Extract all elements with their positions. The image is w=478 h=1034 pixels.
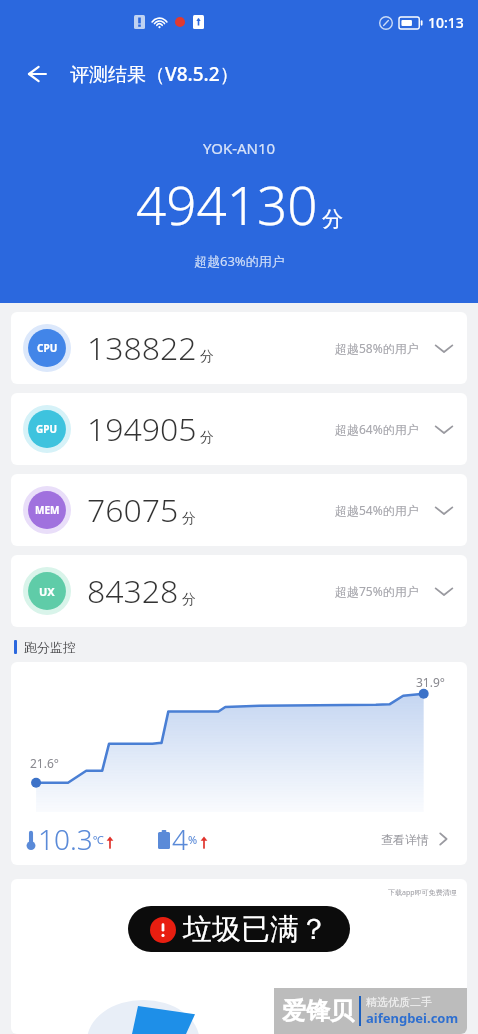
staticText: 评测结果（V8.5.2） [70,61,239,87]
staticText: 超越75%的用户 [335,583,419,599]
staticText: UX [39,584,55,599]
staticText: 4 [172,820,188,858]
button[interactable]: 查看详情 [381,829,453,849]
staticText: % [188,832,198,847]
staticText: 查看详情 [381,832,429,847]
button[interactable]: 下载app即可免费清理 [11,879,467,1034]
staticText: 84328 [87,569,179,613]
staticText: 精选优质二手 [366,995,432,1009]
staticText: 爱锋贝 [282,996,354,1026]
staticText: 31.9° [416,674,445,690]
staticText: 494130 [136,168,318,240]
staticText: 分 [200,429,214,447]
staticText: 下载app即可免费清理 [388,888,457,898]
staticText: CPU [37,341,58,355]
button[interactable]: CPU [11,312,467,384]
staticText: MEM [35,503,60,517]
staticText: 分 [200,348,214,366]
staticText: 超越58%的用户 [335,340,419,356]
staticText: YOK-AN10 [203,138,276,158]
staticText: 超越54%的用户 [335,502,419,518]
button[interactable]: UX [11,555,467,627]
staticText: 分 [182,510,196,528]
staticText: 超越63%的用户 [194,252,285,270]
staticText: 分 [322,206,343,232]
staticText: 10.3 [38,820,93,858]
button[interactable]: Back [16,54,56,94]
button[interactable]: MEM [11,474,467,546]
staticText: 76075 [87,488,179,532]
staticText: 分 [182,591,196,609]
button[interactable]: GPU [11,393,467,465]
staticText: aifengbei.com [366,1009,459,1027]
staticText: 138822 [87,326,197,370]
button[interactable]: 21.6° [11,662,467,865]
staticText: 194905 [87,407,197,451]
staticText: 跑分监控 [24,639,76,655]
staticText: ℃ [93,832,104,847]
staticText: 21.6° [30,755,59,771]
staticText: 10:13 [428,13,464,32]
staticText: 超越64%的用户 [335,421,419,437]
staticText: GPU [36,422,58,436]
staticText: 垃圾已满？ [183,911,328,948]
